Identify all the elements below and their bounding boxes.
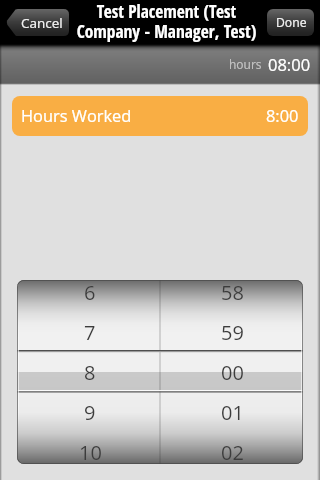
button[interactable]: Hours Worked [12, 96, 308, 136]
staticText: 58 [221, 280, 244, 306]
staticText: 59 [221, 319, 244, 346]
staticText: 9 [84, 399, 96, 426]
staticText: 00 [221, 359, 244, 386]
staticText: 10 [79, 439, 102, 464]
button[interactable]: Done [267, 9, 314, 36]
staticText: 08:00 [268, 53, 311, 75]
staticText: 8 [84, 359, 96, 386]
staticText: 01 [221, 399, 244, 426]
button[interactable]: 6 [17, 280, 303, 464]
staticText: 7 [84, 319, 96, 346]
staticText: 8:00 [266, 104, 299, 126]
staticText: Test Placement (Test Company - Manager, … [13, 0, 320, 43]
staticText: hours [229, 56, 262, 72]
staticText: 02 [221, 439, 244, 464]
staticText: Done [276, 14, 307, 31]
staticText: 6 [84, 280, 96, 306]
button[interactable]: Cancel [6, 9, 69, 36]
staticText: Cancel [21, 14, 63, 32]
staticText: Hours Worked [21, 104, 132, 126]
